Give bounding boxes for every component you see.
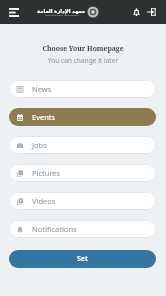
staticText: معهد الإدارة العامة (37, 7, 86, 14)
staticText: Events (32, 112, 56, 122)
button[interactable]: Menu (9, 8, 19, 17)
staticText: Notifications (32, 224, 77, 234)
button[interactable]: Videos (9, 192, 156, 210)
button[interactable]: Notifications (133, 8, 140, 16)
staticText: Institute of Public Administration (45, 14, 79, 17)
button[interactable]: Set (9, 250, 156, 268)
button[interactable]: News (9, 80, 156, 98)
staticText: Choose Your Homepage (0, 44, 166, 53)
staticText: Pictures (32, 168, 61, 178)
button[interactable]: Pictures (9, 164, 156, 182)
staticText: Jobs (32, 140, 47, 150)
button[interactable]: Notifications (9, 220, 156, 238)
button[interactable]: Jobs (9, 136, 156, 154)
button[interactable]: Events (9, 108, 156, 126)
staticText: You can change it later (0, 56, 166, 65)
button[interactable]: Logout (147, 8, 156, 16)
staticText: News (32, 84, 52, 94)
staticText: Set (77, 254, 88, 264)
staticText: Videos (32, 196, 56, 206)
